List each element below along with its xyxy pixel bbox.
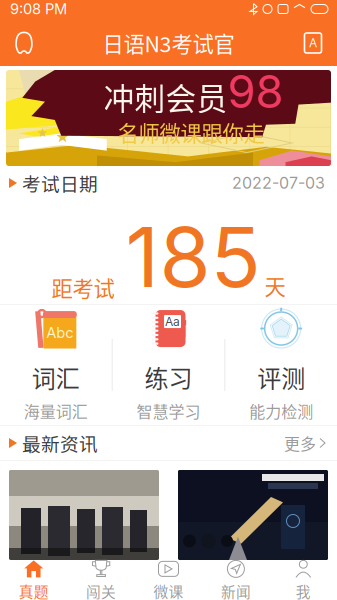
staticText: 日语N3考试官 — [102, 28, 234, 58]
staticText: 闯关 — [86, 580, 116, 600]
staticText: 距考试 — [51, 272, 114, 303]
staticText: 词汇 — [32, 359, 80, 394]
staticText: 微课 — [153, 580, 183, 600]
button[interactable]: 评测 — [225, 305, 337, 425]
button[interactable]: 微课 — [135, 560, 202, 600]
staticText: 2022-07-03 — [232, 173, 325, 193]
staticText: 智慧学习 — [136, 399, 200, 422]
staticText: 真题 — [19, 580, 49, 600]
staticText: 新闻 — [221, 580, 251, 600]
button[interactable]: News item 1 — [9, 470, 159, 560]
staticText: 练习 — [144, 359, 192, 394]
staticText: 冲刺会员 — [103, 74, 227, 119]
button[interactable]: Aa — [113, 305, 224, 425]
staticText: 185 — [125, 207, 260, 307]
button[interactable]: Notifications — [0, 20, 48, 66]
button[interactable]: 冲刺会员 — [6, 70, 331, 166]
staticText: 考试日期 — [22, 169, 98, 196]
staticText: 我 — [296, 580, 311, 600]
staticText: 天 — [264, 270, 285, 301]
staticText: 9:08 PM — [10, 0, 67, 18]
button[interactable]: 真题 — [0, 560, 67, 600]
staticText: 名师微课跟你走 — [117, 117, 264, 148]
staticText: A — [309, 36, 317, 50]
button[interactable]: Abc — [0, 305, 112, 425]
staticText: 更多 — [284, 431, 316, 455]
staticText: 能力检测 — [249, 399, 313, 422]
staticText: Aa — [165, 314, 180, 329]
button[interactable]: 我 — [270, 560, 337, 600]
button[interactable]: 更多 — [284, 423, 325, 463]
button[interactable]: 新闻 — [202, 560, 270, 600]
staticText: 海量词汇 — [24, 399, 88, 422]
button[interactable]: News item 2 — [178, 470, 328, 560]
staticText: 98 — [227, 64, 283, 119]
staticText: Abc — [46, 324, 73, 341]
button[interactable]: Dictionary — [289, 20, 337, 66]
staticText: 评测 — [257, 359, 305, 394]
staticText: 最新资讯 — [22, 429, 98, 456]
button[interactable]: 闯关 — [67, 560, 135, 600]
